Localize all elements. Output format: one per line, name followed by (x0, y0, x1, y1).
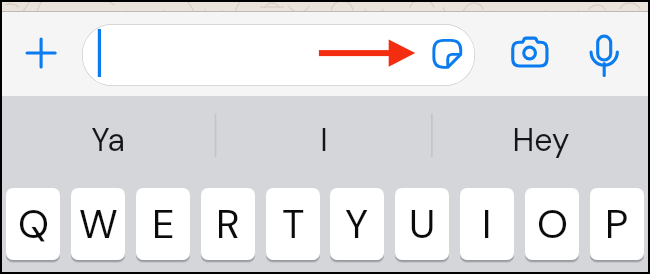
button[interactable]: Add attachment (21, 33, 61, 73)
staticText: Y (345, 198, 369, 250)
button[interactable]: W (71, 188, 125, 260)
button[interactable]: Microphone (584, 30, 628, 74)
button[interactable]: Camera (506, 32, 553, 79)
staticText: T (282, 198, 305, 250)
staticText: R (216, 198, 240, 250)
staticText: Q (18, 198, 49, 250)
staticText: W (79, 198, 118, 250)
button[interactable]: T (266, 188, 320, 260)
button[interactable]: O (525, 188, 579, 260)
staticText: E (152, 198, 175, 250)
button[interactable]: R (201, 188, 255, 260)
button[interactable]: P (590, 188, 644, 260)
button[interactable]: Y (330, 188, 384, 260)
button[interactable]: U (395, 188, 449, 260)
button[interactable]: Hey (456, 112, 626, 168)
button[interactable]: Stickers (429, 35, 466, 72)
button[interactable]: I (239, 112, 409, 168)
button[interactable]: E (136, 188, 190, 260)
staticText: P (605, 198, 629, 250)
staticText: Hey (512, 119, 570, 161)
button[interactable] (82, 24, 475, 86)
staticText: I (482, 198, 492, 250)
staticText: U (409, 198, 436, 250)
staticText: O (537, 198, 568, 250)
staticText: Ya (91, 119, 125, 161)
staticText: I (320, 119, 328, 161)
button[interactable]: Q (6, 188, 60, 260)
button[interactable]: I (460, 188, 514, 260)
button[interactable]: Ya (23, 112, 193, 168)
